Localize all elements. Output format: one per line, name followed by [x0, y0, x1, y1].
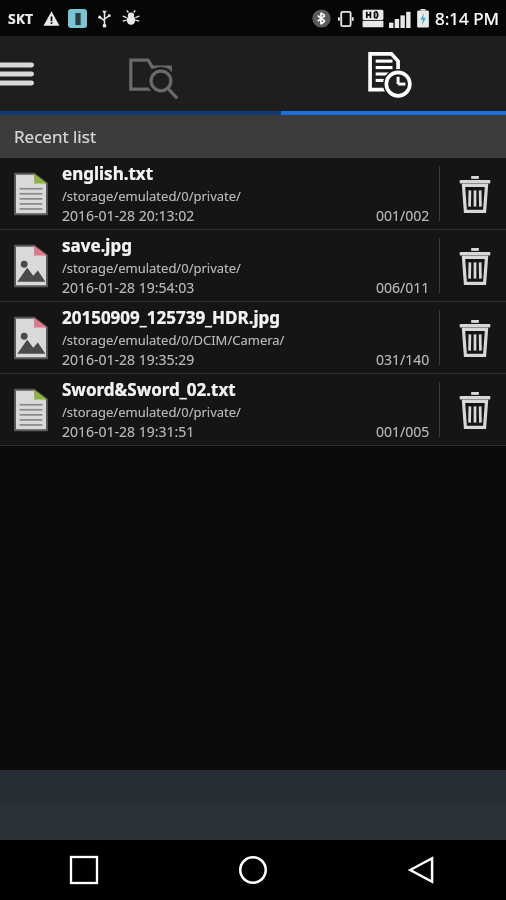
- staticText: Sword&Sword_02.txt: [62, 378, 236, 401]
- staticText: english.txt: [62, 162, 154, 185]
- button[interactable]: Browse files: [56, 36, 281, 111]
- staticText: /storage/emulated/0/private/: [62, 259, 241, 277]
- staticText: Recent list: [14, 125, 97, 148]
- staticText: /storage/emulated/0/private/: [62, 403, 241, 421]
- button[interactable]: Sword&Sword_02.txt: [0, 374, 506, 446]
- button[interactable]: Delete: [444, 374, 506, 445]
- button[interactable]: Recent apps: [0, 840, 168, 900]
- button[interactable]: Delete: [444, 230, 506, 301]
- button[interactable]: 20150909_125739_HDR.jpg: [0, 302, 506, 374]
- button[interactable]: Recent list: [281, 36, 506, 111]
- button[interactable]: english.txt: [0, 158, 506, 230]
- staticText: /storage/emulated/0/private/: [62, 187, 241, 205]
- button[interactable]: Delete: [444, 302, 506, 373]
- staticText: 2016-01-28 20:13:02: [62, 206, 195, 225]
- staticText: 001/002: [376, 206, 430, 225]
- staticText: 2016-01-28 19:54:03: [62, 278, 195, 297]
- button[interactable]: Delete: [444, 158, 506, 229]
- button[interactable]: save.jpg: [0, 230, 506, 302]
- staticText: 2016-01-28 19:31:51: [62, 422, 195, 441]
- button[interactable]: Menu: [0, 36, 56, 111]
- button[interactable]: Back: [337, 840, 506, 900]
- staticText: SKT: [8, 9, 34, 28]
- staticText: 8:14 PM: [435, 7, 499, 30]
- staticText: 031/140: [376, 350, 430, 369]
- staticText: 20150909_125739_HDR.jpg: [62, 306, 281, 329]
- staticText: 001/005: [376, 422, 430, 441]
- staticText: /storage/emulated/0/DCIM/Camera/: [62, 331, 285, 349]
- staticText: save.jpg: [62, 234, 132, 257]
- button[interactable]: Home: [168, 840, 337, 900]
- staticText: 006/011: [376, 278, 430, 297]
- staticText: 2016-01-28 19:35:29: [62, 350, 195, 369]
